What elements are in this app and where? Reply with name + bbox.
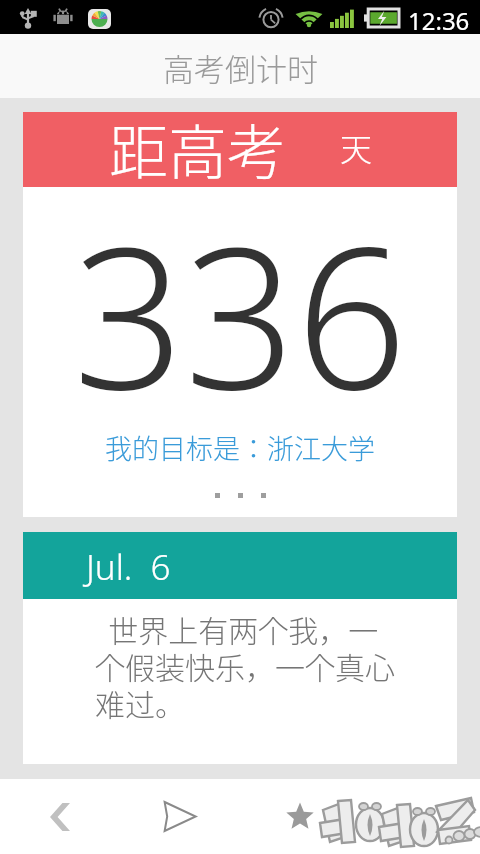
staticText: Jul. 6 (86, 543, 171, 591)
button[interactable]: 距高考 (23, 112, 457, 517)
staticText: 336 (73, 181, 408, 447)
staticText: 高考倒计时 (163, 45, 318, 90)
staticText: 世界上有两个我，一个假装快乐，一个真心难过。 (95, 607, 403, 724)
staticText: 距高考 (109, 106, 287, 181)
button[interactable]: Back (0, 779, 120, 854)
button[interactable]: More (360, 779, 480, 854)
staticText: 天 (340, 124, 373, 170)
staticText: 我的目标是：浙江大学 (105, 428, 375, 467)
staticText: 12:36 (408, 4, 470, 37)
button[interactable]: Favorite (240, 779, 360, 854)
button[interactable]: Send (120, 779, 240, 854)
button[interactable]: Jul. 6 (23, 532, 457, 764)
